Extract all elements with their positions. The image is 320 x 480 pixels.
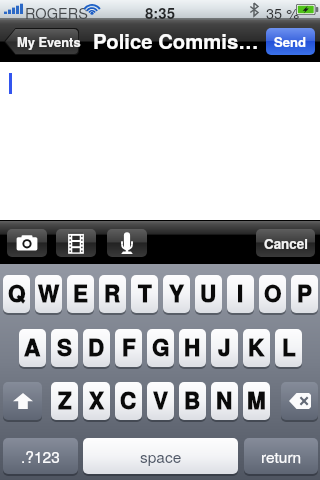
button[interactable]: My Events <box>4 28 79 55</box>
button[interactable]: S <box>51 329 78 367</box>
staticText: O <box>264 277 282 309</box>
staticText: ROGERS <box>25 2 89 22</box>
staticText: 35 % <box>266 2 300 22</box>
staticText: G <box>152 331 170 363</box>
button[interactable]: A <box>19 329 46 367</box>
button[interactable]: Record video <box>56 229 96 257</box>
button[interactable]: X <box>83 382 110 420</box>
button[interactable]: D <box>83 329 110 367</box>
button[interactable]: Y <box>163 275 190 313</box>
staticText: R <box>104 277 121 309</box>
button[interactable]: M <box>243 382 270 420</box>
staticText: return <box>261 445 302 467</box>
button[interactable]: L <box>275 329 302 367</box>
button[interactable]: Shift <box>3 382 42 420</box>
staticText: E <box>73 277 89 309</box>
staticText: X <box>89 384 105 416</box>
button[interactable]: Record audio <box>107 229 147 257</box>
staticText: J <box>218 331 231 363</box>
button[interactable]: space <box>83 438 238 474</box>
staticText: B <box>184 384 201 416</box>
button[interactable]: I <box>227 275 254 313</box>
staticText: P <box>297 277 313 309</box>
button[interactable]: B <box>179 382 206 420</box>
staticText: .?123 <box>21 445 60 467</box>
staticText: Police Commis… <box>93 26 259 55</box>
staticText: F <box>122 331 136 363</box>
staticText: 8:35 <box>145 2 176 22</box>
button[interactable]: O <box>259 275 286 313</box>
button[interactable]: Take photo <box>7 229 47 257</box>
staticText: A <box>24 331 41 363</box>
staticText: T <box>138 277 152 309</box>
button[interactable]: return <box>244 438 318 474</box>
button[interactable]: G <box>147 329 174 367</box>
staticText: C <box>120 384 137 416</box>
staticText: Z <box>58 384 72 416</box>
button[interactable]: Z <box>51 382 78 420</box>
button[interactable]: F <box>115 329 142 367</box>
button[interactable]: P <box>291 275 318 313</box>
button[interactable]: K <box>243 329 270 367</box>
staticText: D <box>88 331 105 363</box>
staticText: M <box>247 384 266 416</box>
button[interactable]: .?123 <box>3 438 78 474</box>
button[interactable]: U <box>195 275 222 313</box>
button[interactable]: H <box>179 329 206 367</box>
button[interactable]: N <box>211 382 238 420</box>
staticText: Y <box>169 277 185 309</box>
button[interactable]: C <box>115 382 142 420</box>
staticText: U <box>200 277 217 309</box>
staticText: Send <box>274 32 307 51</box>
staticText: K <box>248 331 265 363</box>
staticText: N <box>216 384 233 416</box>
button[interactable]: E <box>67 275 94 313</box>
staticText: I <box>237 277 244 309</box>
staticText: space <box>140 445 182 467</box>
staticText: V <box>153 384 169 416</box>
button[interactable]: T <box>131 275 158 313</box>
button[interactable]: V <box>147 382 174 420</box>
staticText: My Events <box>17 32 81 50</box>
staticText: Cancel <box>264 234 308 253</box>
staticText: H <box>184 331 201 363</box>
staticText: Q <box>8 277 26 309</box>
button[interactable]: Cancel <box>256 229 315 257</box>
button[interactable]: Send <box>266 28 315 55</box>
button[interactable]: W <box>35 275 62 313</box>
staticText: S <box>57 331 73 363</box>
button[interactable]: R <box>99 275 126 313</box>
button[interactable]: J <box>211 329 238 367</box>
button[interactable]: Q <box>3 275 30 313</box>
staticText: L <box>282 331 296 363</box>
staticText: W <box>38 277 60 309</box>
button[interactable]: Backspace <box>281 382 318 420</box>
